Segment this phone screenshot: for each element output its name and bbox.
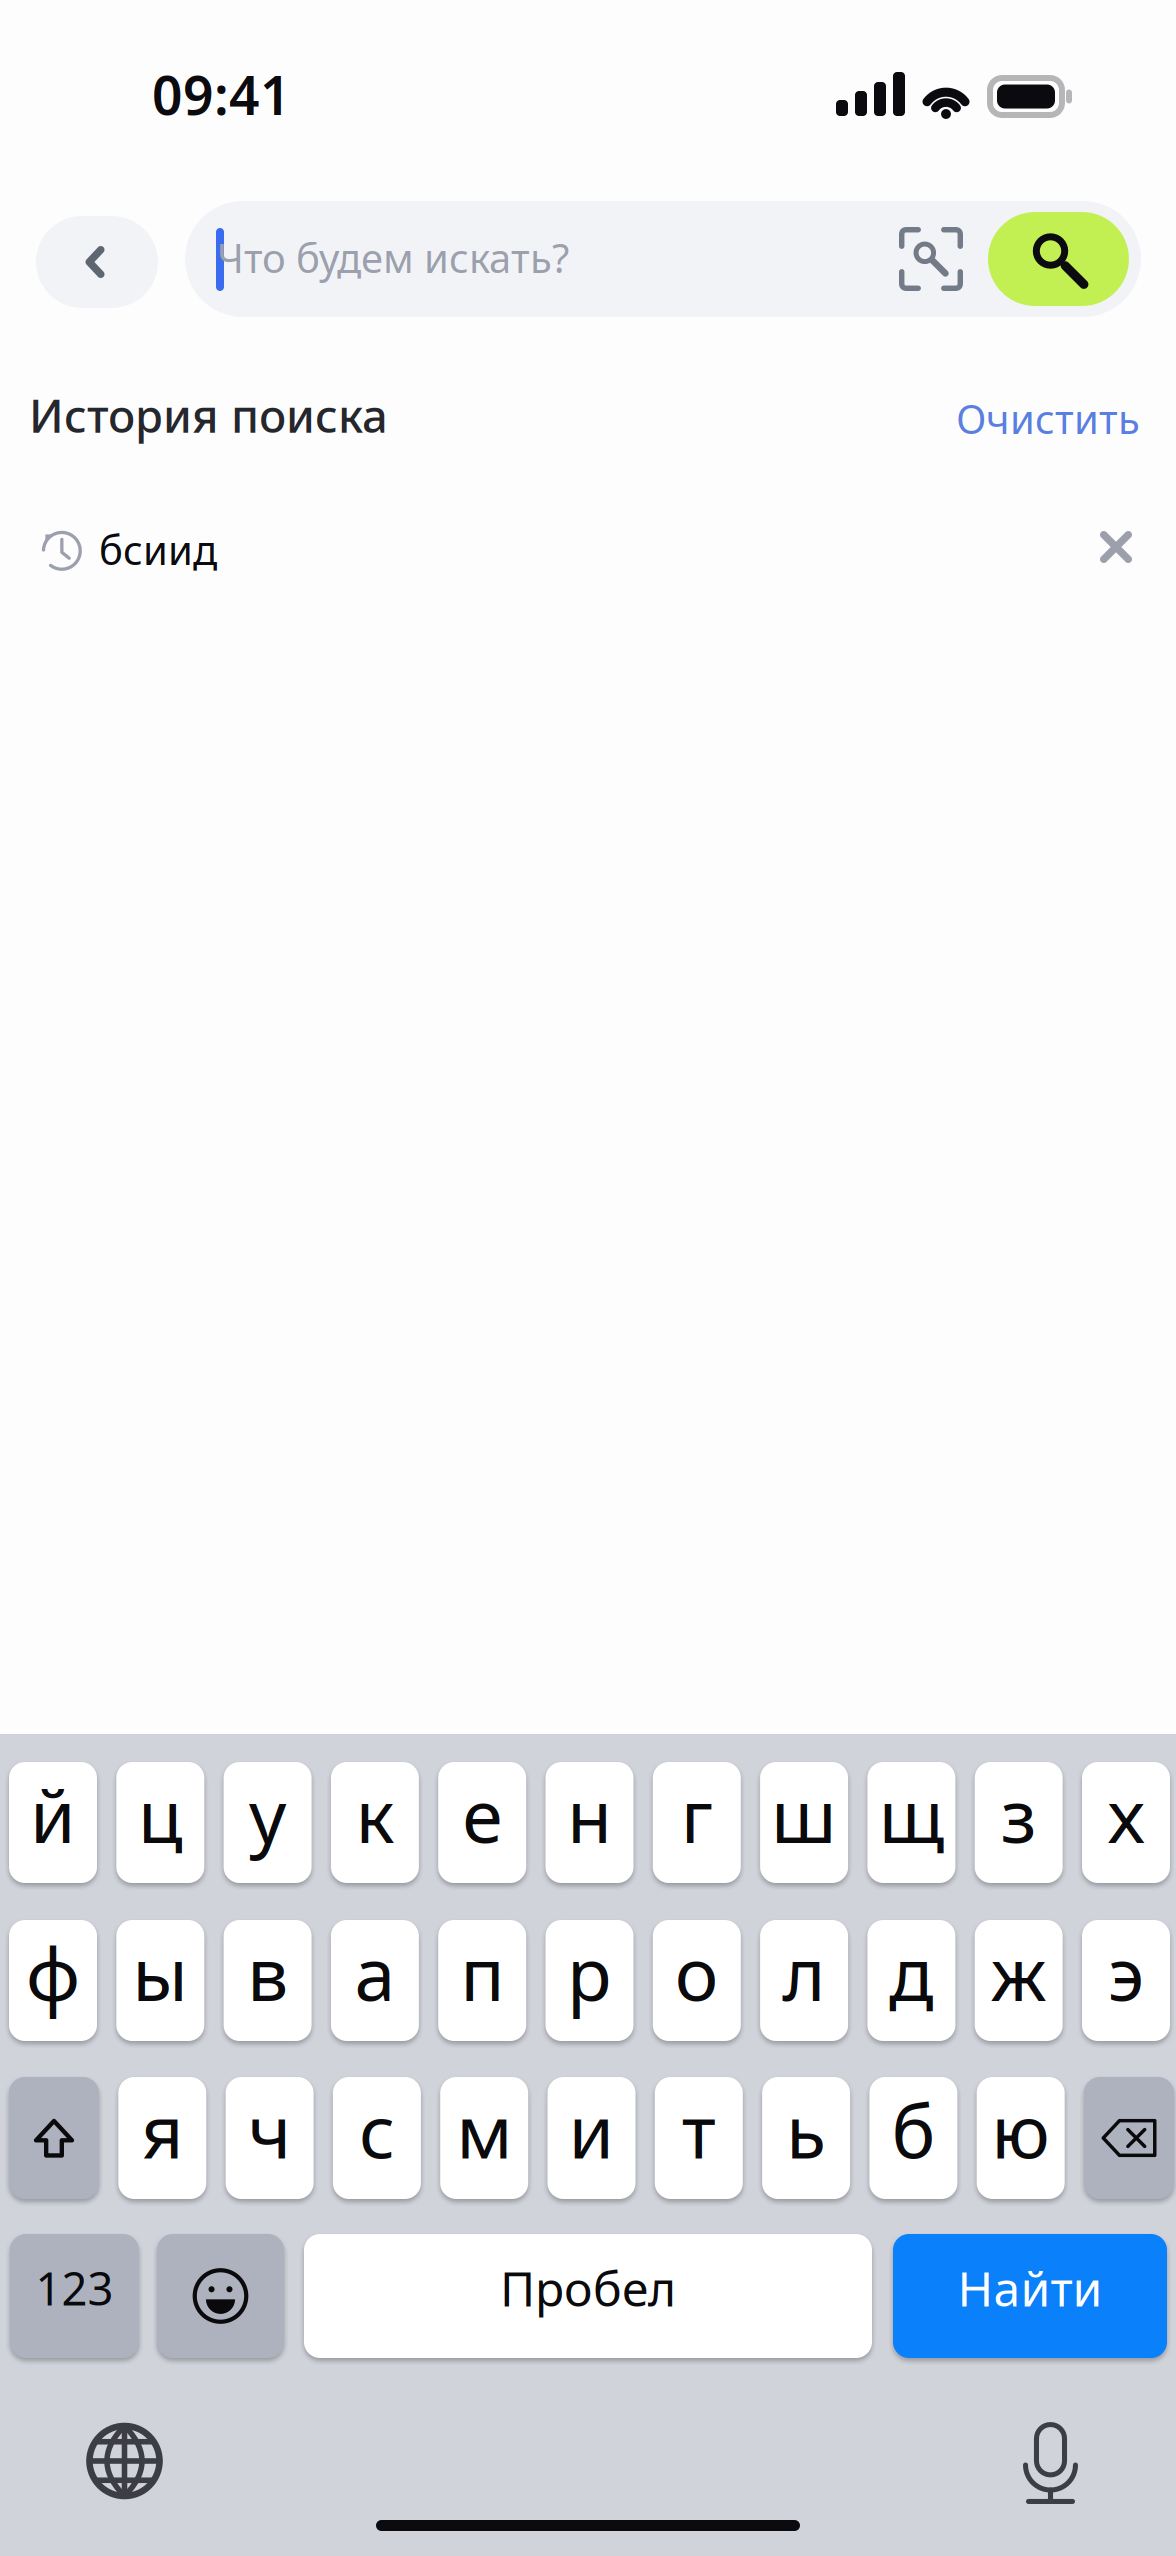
button[interactable]: э: [1082, 1920, 1170, 2041]
staticText: Что будем искать?: [217, 231, 569, 284]
staticText: з: [1001, 1766, 1037, 1863]
staticText: л: [783, 1924, 826, 2021]
staticText: е: [462, 1766, 502, 1863]
staticText: ф: [26, 1924, 80, 2021]
staticText: ч: [248, 2081, 291, 2179]
staticText: д: [889, 1924, 934, 2021]
staticText: Пробел: [500, 2256, 676, 2320]
button[interactable]: д: [867, 1920, 955, 2041]
button[interactable]: е: [438, 1762, 526, 1883]
staticText: б: [891, 2081, 935, 2179]
staticText: ц: [138, 1766, 183, 1863]
staticText: ю: [991, 2081, 1050, 2179]
button[interactable]: Сменить язык: [64, 2406, 185, 2516]
button[interactable]: а: [331, 1920, 419, 2041]
staticText: Найти: [957, 2256, 1102, 2320]
staticText: ш: [771, 1766, 837, 1863]
staticText: к: [355, 1766, 394, 1863]
button[interactable]: р: [545, 1920, 633, 2041]
staticText: ь: [786, 2081, 826, 2179]
staticText: с: [359, 2081, 395, 2179]
button[interactable]: й: [9, 1762, 97, 1883]
staticText: й: [30, 1766, 76, 1863]
button[interactable]: ш: [760, 1762, 848, 1883]
button[interactable]: к: [331, 1762, 419, 1883]
button[interactable]: Найти: [988, 212, 1129, 306]
button[interactable]: п: [438, 1920, 526, 2041]
button[interactable]: ф: [9, 1920, 97, 2041]
button[interactable]: ы: [116, 1920, 204, 2041]
staticText: р: [567, 1924, 612, 2021]
staticText: у: [249, 1766, 286, 1863]
button[interactable]: я: [118, 2077, 206, 2199]
staticText: т: [682, 2081, 716, 2179]
staticText: м: [456, 2081, 512, 2179]
button[interactable]: с: [333, 2077, 421, 2199]
button[interactable]: м: [440, 2077, 528, 2199]
button[interactable]: ь: [762, 2077, 850, 2199]
staticText: и: [568, 2081, 614, 2179]
button[interactable]: ю: [977, 2077, 1065, 2199]
button[interactable]: Удалить: [1084, 2077, 1174, 2199]
staticText: ы: [132, 1924, 188, 2021]
button[interactable]: Удалить запрос: [1058, 489, 1174, 605]
button[interactable]: б: [869, 2077, 957, 2199]
staticText: о: [675, 1924, 719, 2021]
button[interactable]: Очистить: [948, 382, 1148, 455]
button[interactable]: Поиск по фото: [883, 201, 979, 317]
button[interactable]: т: [655, 2077, 743, 2199]
button[interactable]: з: [975, 1762, 1063, 1883]
staticText: х: [1107, 1766, 1144, 1863]
button[interactable]: бсиид: [0, 465, 1060, 600]
staticText: щ: [878, 1766, 944, 1863]
button[interactable]: ж: [975, 1920, 1063, 2041]
button[interactable]: Назад: [36, 216, 158, 308]
staticText: г: [681, 1766, 713, 1863]
button[interactable]: г: [653, 1762, 741, 1883]
staticText: История поиска: [29, 385, 388, 445]
staticText: я: [141, 2081, 183, 2179]
button[interactable]: Эмодзи: [157, 2234, 284, 2358]
button[interactable]: н: [545, 1762, 633, 1883]
button[interactable]: Диктовка: [990, 2408, 1111, 2518]
button[interactable]: ч: [226, 2077, 314, 2199]
staticText: п: [460, 1924, 504, 2021]
button[interactable]: в: [224, 1920, 312, 2041]
button[interactable]: и: [547, 2077, 635, 2199]
button[interactable]: Найти: [893, 2234, 1167, 2358]
staticText: в: [247, 1924, 288, 2021]
staticText: Очистить: [956, 392, 1140, 445]
staticText: 123: [35, 2258, 113, 2318]
button[interactable]: о: [653, 1920, 741, 2041]
button[interactable]: щ: [867, 1762, 955, 1883]
button[interactable]: Верхний регистр: [9, 2077, 99, 2199]
staticText: ж: [991, 1924, 1047, 2021]
button[interactable]: ц: [116, 1762, 204, 1883]
button[interactable]: х: [1082, 1762, 1170, 1883]
staticText: н: [567, 1766, 612, 1863]
button[interactable]: Пробел: [304, 2234, 872, 2358]
staticText: э: [1108, 1924, 1144, 2021]
button[interactable]: л: [760, 1920, 848, 2041]
staticText: бсиид: [99, 523, 217, 576]
button[interactable]: 123: [10, 2234, 139, 2358]
staticText: а: [354, 1924, 395, 2021]
button[interactable]: у: [224, 1762, 312, 1883]
staticText: 09:41: [152, 59, 291, 130]
